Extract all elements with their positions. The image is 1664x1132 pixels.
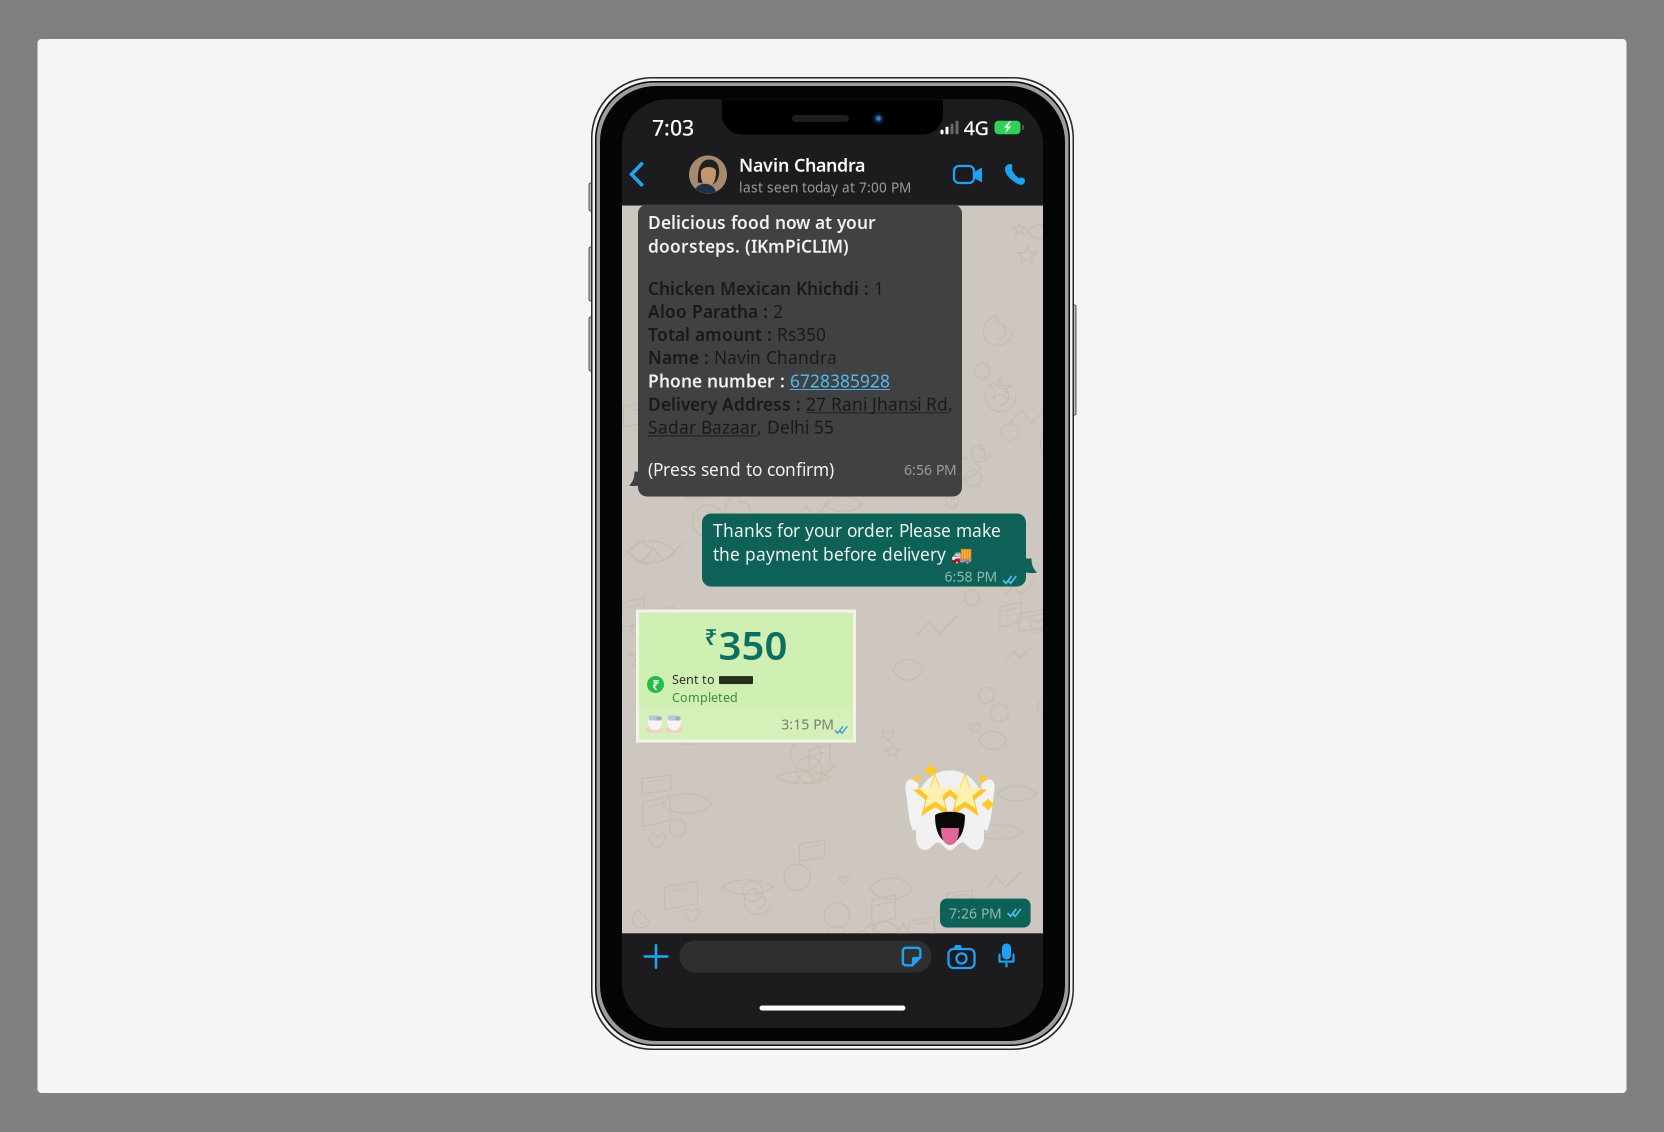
staticText: Navin Chandra xyxy=(739,153,865,177)
staticText: 6:56 PM xyxy=(904,460,957,479)
staticText: 6728385928 xyxy=(790,369,890,392)
staticText: Name : Navin Chandra xyxy=(648,346,837,369)
staticText: 7:26 PM xyxy=(949,903,1002,923)
button[interactable]: Video call xyxy=(946,143,996,205)
staticText: Delicious food now at your doorsteps. (I… xyxy=(648,210,876,258)
staticText: Total amount : Rs350 xyxy=(648,323,826,346)
staticText: 4G xyxy=(963,114,989,141)
button[interactable]: Voice message xyxy=(986,934,1031,978)
staticText: Thanks for your order. Please make the p… xyxy=(713,518,1001,566)
staticText: Completed xyxy=(672,689,738,706)
staticText: Sent to xyxy=(672,670,715,688)
button[interactable]: Navin Chandra xyxy=(689,143,946,205)
staticText: (Press send to confirm) xyxy=(648,458,834,481)
staticText: 6:58 PM xyxy=(944,567,997,586)
button[interactable]: Camera xyxy=(931,934,986,978)
button[interactable]: Voice call xyxy=(996,143,1043,205)
button[interactable]: Attach xyxy=(633,934,679,978)
staticText: Delivery Address : 27 Rani Jhansi Rd, Sa… xyxy=(648,392,953,438)
staticText: last seen today at 7:00 PM xyxy=(739,178,911,196)
button[interactable]: Stickers xyxy=(900,940,931,972)
button[interactable]: Back xyxy=(622,143,689,205)
staticText: Chicken Mexican Khichdi : 1 xyxy=(648,277,884,300)
staticText: ₹ xyxy=(704,621,717,652)
staticText: 350 xyxy=(718,617,787,672)
staticText: ₹ xyxy=(651,674,659,694)
staticText: Aloo Paratha : 2 xyxy=(648,300,783,323)
staticText: Phone number : xyxy=(648,369,790,392)
staticText: 7:03 xyxy=(652,113,694,142)
staticText: 3:15 PM xyxy=(781,714,834,733)
